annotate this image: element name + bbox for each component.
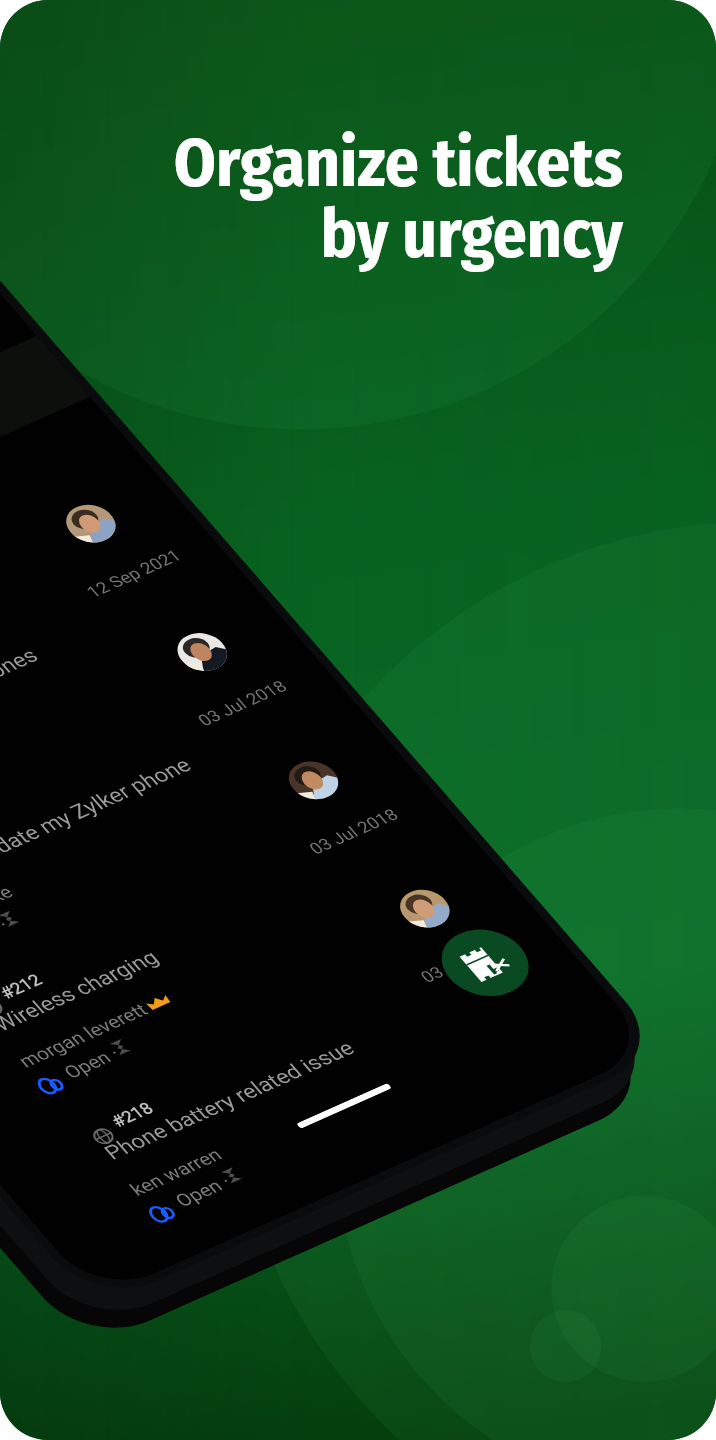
staticText: Organize tickets [173,123,623,203]
staticText: Open · [60,1043,125,1083]
staticText: james cooke [0,882,18,944]
button[interactable]: #212 [0,833,441,1129]
staticText: 03 Jul 2018 [416,933,514,986]
staticText: Wireless charging [0,946,164,1036]
staticText: morgan leverett [14,1000,153,1072]
button[interactable]: Add ticket [424,918,546,1008]
staticText: 03 Jul 2018 [193,676,291,729]
button[interactable]: #218 [64,961,553,1258]
staticText: Unable to update my Zylker phone [0,753,196,908]
staticText: Unable to connect earphones [0,644,43,779]
staticText: by urgency [320,194,623,274]
staticText: #218 [107,1098,158,1130]
staticText: 12 Sep 2021 [82,545,185,601]
staticText: ken warren [126,1144,227,1200]
staticText: #212 [0,970,46,1002]
staticText: 03 Jul 2018 [305,805,402,857]
button[interactable]: #203 [0,576,219,873]
staticText: Open · [171,1172,236,1211]
button[interactable]: #206 [0,704,330,1001]
staticText: Phone battery related issue [99,1036,360,1164]
staticText: Open · [0,915,14,955]
button[interactable]: #200 [0,448,107,745]
